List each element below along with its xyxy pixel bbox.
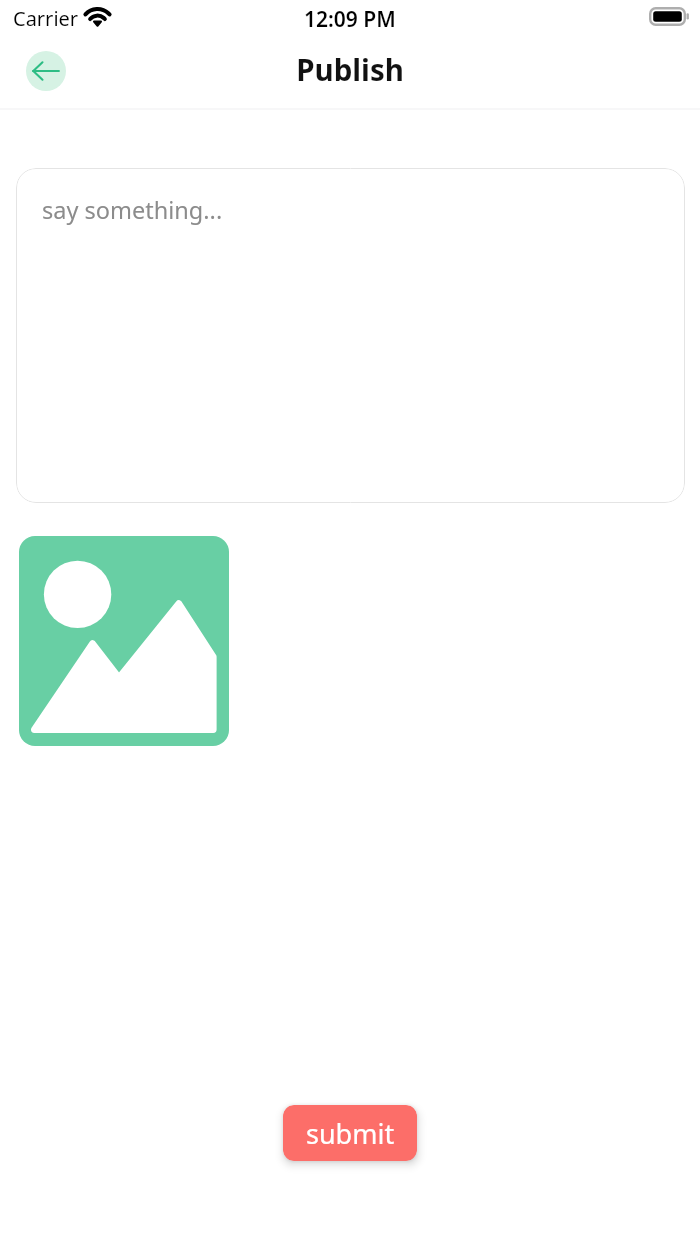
staticText: say something...	[42, 194, 223, 226]
staticText: Publish	[296, 49, 404, 89]
staticText: submit	[306, 1115, 395, 1152]
button[interactable]: submit	[283, 1105, 417, 1161]
staticText: 12:09 PM	[304, 5, 396, 34]
button[interactable]: Post text field	[16, 168, 685, 503]
staticText: Carrier	[13, 5, 79, 32]
button[interactable]: Add photo	[19, 536, 229, 746]
button[interactable]: Back	[26, 51, 66, 91]
